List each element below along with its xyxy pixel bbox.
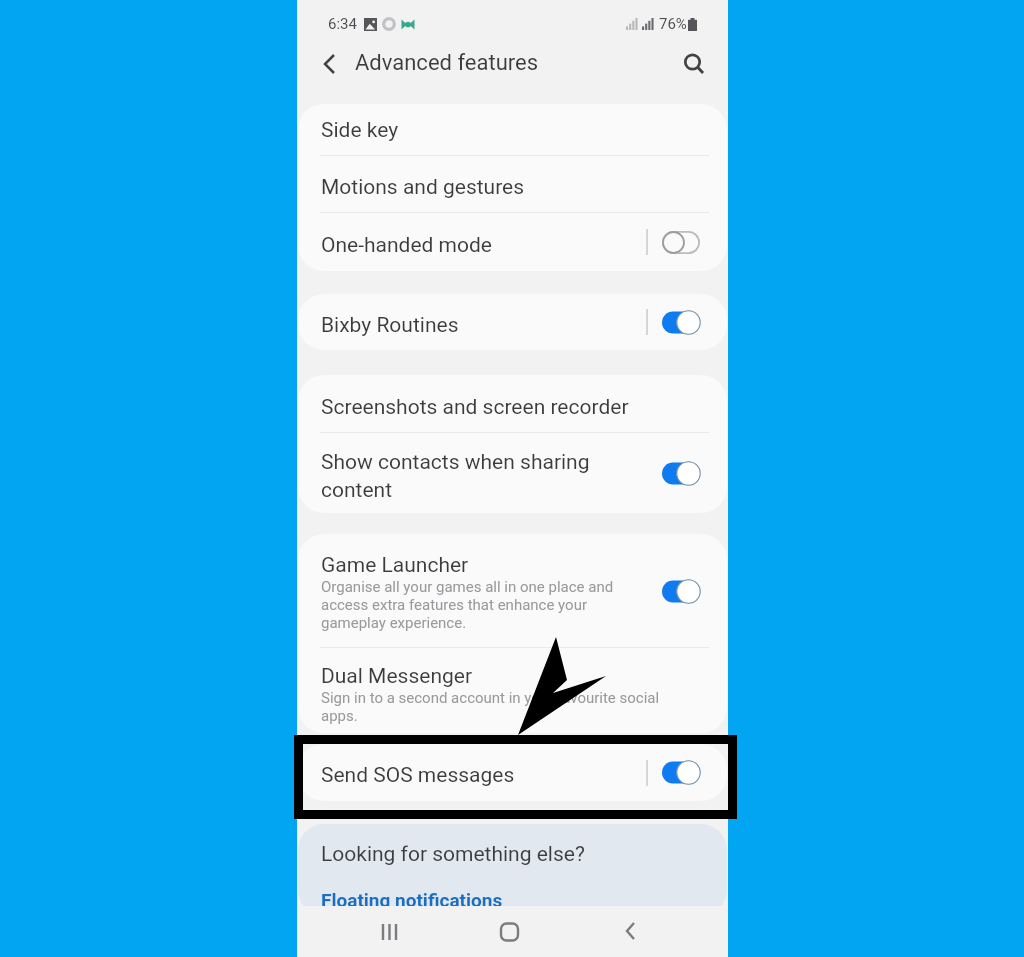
button[interactable]: Toggle on [662, 580, 700, 603]
staticText: Looking for something else? [321, 842, 585, 867]
button[interactable]: Search [672, 46, 708, 82]
staticText: Dual Messenger [321, 664, 473, 689]
button[interactable]: Dual Messenger [298, 648, 727, 733]
button[interactable]: Game Launcher [298, 534, 727, 648]
staticText: Game Launcher [321, 553, 469, 578]
button[interactable]: Send SOS messages [298, 744, 727, 801]
staticText: 76% [659, 15, 687, 33]
button[interactable]: Bixby Routines [298, 294, 727, 350]
button[interactable]: Toggle on [662, 311, 700, 334]
button[interactable]: One-handed mode [298, 213, 727, 271]
button[interactable]: Screenshots and screen recorder [298, 375, 727, 433]
staticText: 6:34 [328, 15, 357, 33]
staticText: Send SOS messages [321, 763, 515, 788]
button[interactable]: Back [313, 46, 349, 82]
staticText: Floating notifications [321, 889, 503, 911]
button[interactable]: Toggle on [662, 462, 700, 485]
staticText: Bixby Routines [321, 313, 459, 338]
button[interactable]: Motions and gestures [298, 156, 727, 213]
staticText: Screenshots and screen recorder [321, 395, 629, 420]
staticText: One-handed mode [321, 233, 492, 258]
staticText: Organise all your games all in one place… [321, 578, 626, 632]
staticText: Advanced features [355, 50, 539, 76]
staticText: Side key [321, 118, 399, 143]
staticText: Sign in to a second account in your favo… [321, 689, 666, 725]
button[interactable]: Toggle on [662, 761, 700, 784]
button[interactable]: Show contacts when sharing content [298, 433, 727, 513]
button[interactable]: Recents [364, 910, 411, 954]
staticText: Motions and gestures [321, 175, 525, 200]
staticText: Show contacts when sharing content [321, 450, 621, 502]
button[interactable]: Home [487, 910, 531, 954]
button[interactable]: Back [607, 910, 651, 954]
button[interactable]: Side key [298, 104, 727, 156]
button[interactable]: Toggle off [662, 231, 700, 254]
